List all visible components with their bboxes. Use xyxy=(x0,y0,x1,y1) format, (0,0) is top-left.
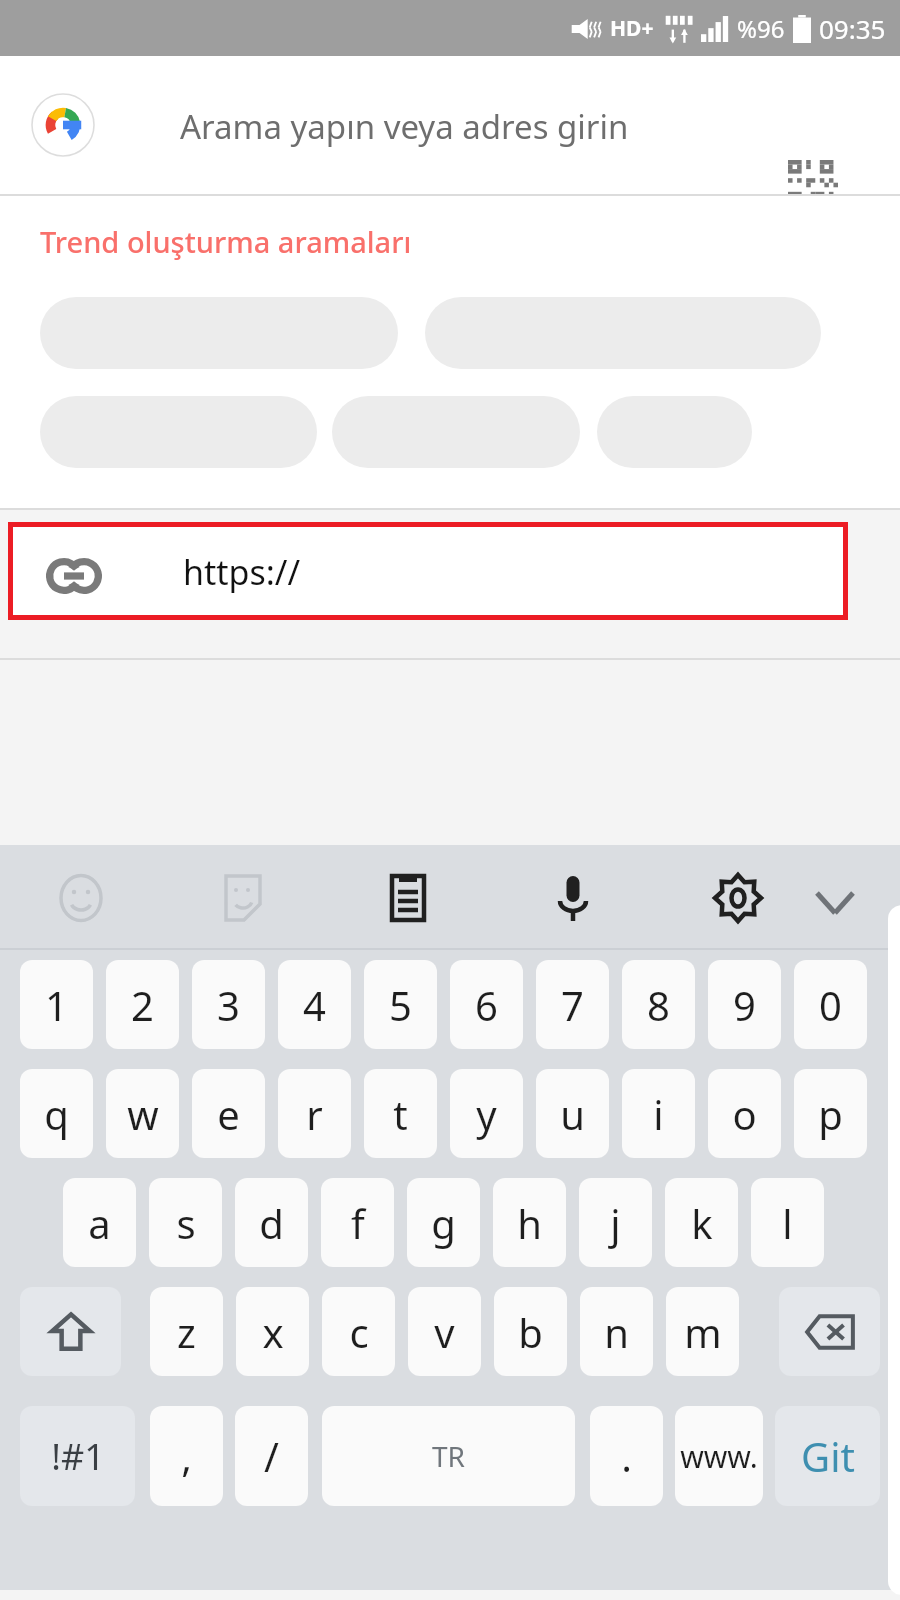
staticText: HD+ xyxy=(610,14,654,43)
staticText: TR xyxy=(432,1437,465,1475)
button[interactable]: 4 xyxy=(278,960,351,1049)
staticText: b xyxy=(518,1305,543,1359)
button[interactable]: 3 xyxy=(192,960,265,1049)
button[interactable]: Backspace xyxy=(779,1287,880,1376)
staticText: y xyxy=(476,1087,497,1141)
staticText: https:// xyxy=(183,549,301,595)
staticText: v xyxy=(434,1305,455,1359)
button[interactable]: g xyxy=(407,1178,480,1267)
button[interactable]: x xyxy=(236,1287,309,1376)
button[interactable]: Arama yapın veya adres girin xyxy=(0,56,900,194)
button[interactable]: s xyxy=(149,1178,222,1267)
button[interactable]: Trending search xyxy=(332,396,580,468)
button[interactable]: Shift xyxy=(20,1287,121,1376)
staticText: d xyxy=(259,1196,284,1250)
button[interactable]: z xyxy=(150,1287,223,1376)
button[interactable]: / xyxy=(235,1406,308,1506)
button[interactable]: Voice input xyxy=(540,865,606,931)
button[interactable]: o xyxy=(708,1069,781,1158)
button[interactable]: 8 xyxy=(622,960,695,1049)
button[interactable]: 0 xyxy=(794,960,867,1049)
button[interactable]: r xyxy=(278,1069,351,1158)
button[interactable]: https:// xyxy=(13,527,843,615)
button[interactable]: Stickers xyxy=(210,865,276,931)
button[interactable]: b xyxy=(494,1287,567,1376)
staticText: w xyxy=(127,1087,159,1141)
button[interactable]: Git xyxy=(775,1406,880,1506)
staticText: l xyxy=(782,1196,793,1250)
button[interactable]: l xyxy=(751,1178,824,1267)
staticText: 6 xyxy=(475,978,498,1032)
staticText: 7 xyxy=(561,978,584,1032)
button[interactable]: TR xyxy=(322,1406,575,1506)
staticText: u xyxy=(560,1087,585,1141)
staticText: Arama yapın veya adres girin xyxy=(180,104,629,149)
button[interactable]: e xyxy=(192,1069,265,1158)
staticText: k xyxy=(691,1196,713,1250)
staticText: 9 xyxy=(733,978,756,1032)
button[interactable]: t xyxy=(364,1069,437,1158)
button[interactable]: Trending search xyxy=(597,396,752,468)
button[interactable]: i xyxy=(622,1069,695,1158)
button[interactable]: y xyxy=(450,1069,523,1158)
button[interactable]: w xyxy=(106,1069,179,1158)
staticText: 0 xyxy=(819,978,842,1032)
staticText: 1 xyxy=(45,978,68,1032)
button[interactable]: q xyxy=(20,1069,93,1158)
button[interactable]: Trending search xyxy=(40,396,317,468)
staticText: r xyxy=(306,1087,323,1141)
button[interactable]: 6 xyxy=(450,960,523,1049)
staticText: c xyxy=(349,1305,369,1359)
staticText: a xyxy=(88,1196,111,1250)
button[interactable]: Trending search xyxy=(40,297,398,369)
button[interactable]: f xyxy=(321,1178,394,1267)
staticText: %96 xyxy=(737,12,785,45)
staticText: t xyxy=(393,1087,408,1141)
button[interactable]: a xyxy=(63,1178,136,1267)
button[interactable]: u xyxy=(536,1069,609,1158)
staticText: Trend oluşturma aramaları xyxy=(40,222,412,261)
staticText: 5 xyxy=(389,978,412,1032)
staticText: / xyxy=(264,1429,279,1483)
button[interactable]: c xyxy=(322,1287,395,1376)
button[interactable]: Keyboard settings xyxy=(705,865,771,931)
staticText: e xyxy=(217,1087,240,1141)
button[interactable]: h xyxy=(493,1178,566,1267)
button[interactable]: , xyxy=(150,1406,223,1506)
staticText: Git xyxy=(801,1429,855,1483)
staticText: , xyxy=(181,1429,192,1483)
button[interactable]: j xyxy=(579,1178,652,1267)
button[interactable]: Scan QR code xyxy=(772,144,854,226)
button[interactable]: 5 xyxy=(364,960,437,1049)
button[interactable]: Hide keyboard xyxy=(805,873,865,933)
button[interactable]: 1 xyxy=(20,960,93,1049)
staticText: 2 xyxy=(131,978,154,1032)
staticText: 4 xyxy=(303,978,326,1032)
button[interactable]: !#1 xyxy=(20,1406,135,1506)
staticText: q xyxy=(44,1087,69,1141)
staticText: www. xyxy=(680,1436,758,1477)
button[interactable]: n xyxy=(580,1287,653,1376)
button[interactable]: Trending search xyxy=(425,297,821,369)
button[interactable]: v xyxy=(408,1287,481,1376)
staticText: x xyxy=(262,1305,284,1359)
button[interactable]: www. xyxy=(675,1406,763,1506)
button[interactable]: . xyxy=(590,1406,663,1506)
button[interactable]: Clipboard xyxy=(375,865,441,931)
button[interactable]: 2 xyxy=(106,960,179,1049)
staticText: z xyxy=(177,1305,196,1359)
button[interactable]: 9 xyxy=(708,960,781,1049)
button[interactable]: m xyxy=(666,1287,739,1376)
button[interactable]: p xyxy=(794,1069,867,1158)
button[interactable]: k xyxy=(665,1178,738,1267)
button[interactable]: 7 xyxy=(536,960,609,1049)
staticText: . xyxy=(621,1429,632,1483)
staticText: 09:35 xyxy=(819,11,886,46)
staticText: s xyxy=(176,1196,196,1250)
staticText: 8 xyxy=(647,978,670,1032)
button[interactable]: d xyxy=(235,1178,308,1267)
staticText: g xyxy=(431,1196,456,1250)
staticText: 3 xyxy=(217,978,240,1032)
staticText: !#1 xyxy=(51,1432,105,1481)
button[interactable]: Emoji xyxy=(48,865,114,931)
